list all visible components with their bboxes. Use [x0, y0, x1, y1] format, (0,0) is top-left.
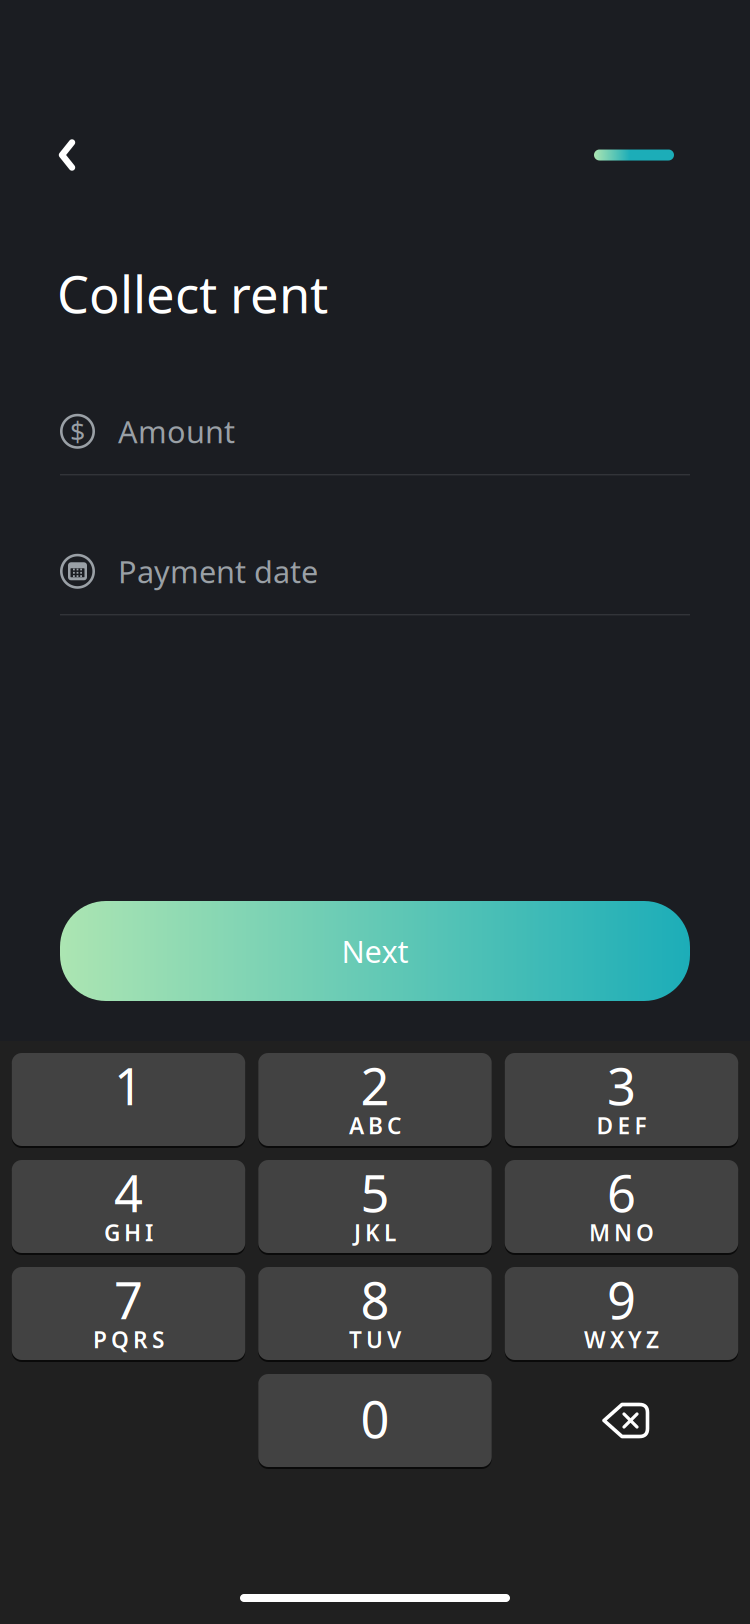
staticText: 3	[607, 1052, 636, 1119]
button[interactable]: Payment date	[60, 551, 690, 615]
staticText: 4	[114, 1159, 143, 1226]
button[interactable]: 9	[505, 1267, 738, 1360]
button[interactable]: 2	[258, 1053, 492, 1146]
staticText: Amount	[118, 411, 235, 452]
staticText: J K L	[354, 1217, 396, 1247]
button[interactable]: $	[60, 411, 690, 475]
staticText: $	[70, 414, 85, 449]
button[interactable]: Back	[34, 122, 100, 188]
staticText: Next	[341, 931, 408, 971]
staticText: 7	[114, 1266, 143, 1333]
staticText: 1	[114, 1052, 143, 1119]
staticText: M N O	[589, 1217, 654, 1247]
button[interactable]: 3	[505, 1053, 738, 1146]
staticText: A B C	[349, 1110, 401, 1140]
staticText: P Q R S	[93, 1324, 164, 1354]
staticText: 5	[360, 1159, 389, 1226]
staticText: 6	[607, 1159, 636, 1226]
staticText: Payment date	[118, 551, 318, 592]
button[interactable]: 5	[258, 1160, 492, 1253]
button[interactable]: 8	[258, 1267, 492, 1360]
staticText: 0	[360, 1385, 389, 1452]
button[interactable]: 1	[12, 1053, 245, 1146]
staticText: Collect rent	[57, 260, 328, 327]
staticText: W X Y Z	[584, 1324, 659, 1354]
staticText: T U V	[349, 1324, 401, 1354]
staticText: 8	[360, 1266, 389, 1333]
button[interactable]: 7	[12, 1267, 245, 1360]
button[interactable]: Next	[60, 901, 690, 1001]
staticText: G H I	[104, 1217, 153, 1247]
button[interactable]: 6	[505, 1160, 738, 1253]
staticText: D E F	[596, 1110, 646, 1140]
button[interactable]: 4	[12, 1160, 245, 1253]
staticText: 9	[607, 1266, 636, 1333]
button[interactable]: Delete	[505, 1374, 738, 1467]
button[interactable]: 0	[258, 1374, 492, 1467]
staticText: 2	[360, 1052, 389, 1119]
